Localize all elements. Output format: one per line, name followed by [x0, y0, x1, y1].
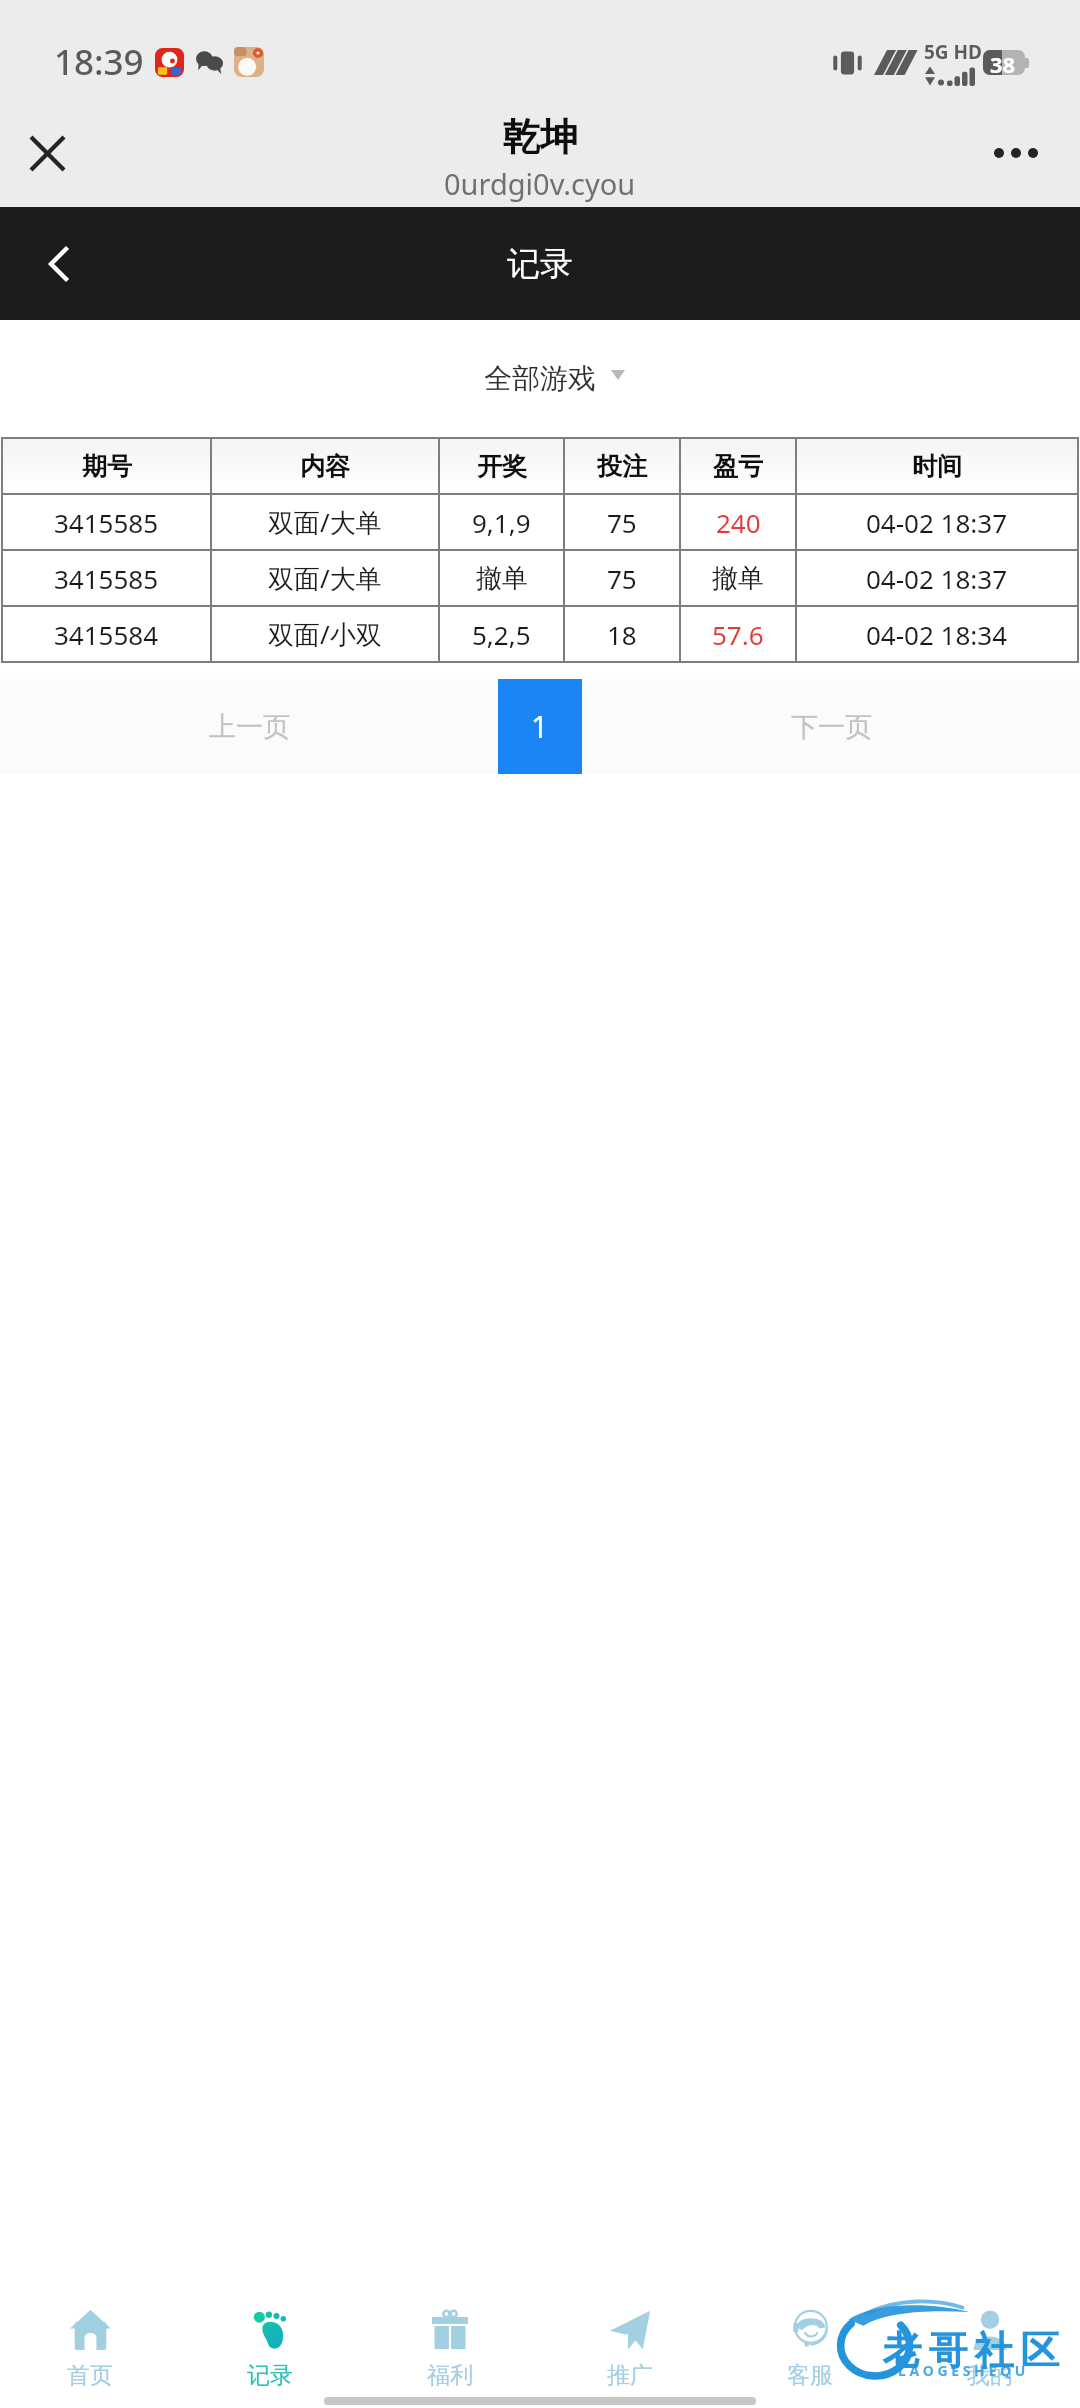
- button[interactable]: 客服: [720, 2309, 900, 2408]
- button[interactable]: 记录: [180, 2309, 360, 2408]
- staticText: 3415584: [54, 617, 159, 652]
- button[interactable]: 全部游戏: [484, 361, 596, 396]
- staticText: 04-02 18:34: [866, 617, 1008, 652]
- button[interactable]: 下一页: [582, 679, 1080, 774]
- staticText: 记录: [507, 243, 573, 285]
- staticText: 75: [607, 561, 637, 596]
- staticText: 客服: [787, 2361, 833, 2390]
- staticText: 记录: [247, 2361, 293, 2390]
- staticText: 撤单: [712, 562, 764, 595]
- button[interactable]: 我的: [900, 2309, 1080, 2408]
- staticText: 9,1,9: [472, 505, 531, 540]
- staticText: 57.6: [712, 617, 764, 652]
- button[interactable]: 上一页: [0, 679, 498, 774]
- staticText: 投注: [597, 451, 647, 482]
- staticText: 240: [716, 505, 761, 540]
- button[interactable]: 推广: [540, 2309, 720, 2408]
- staticText: 时间: [912, 451, 962, 482]
- staticText: 福利: [427, 2361, 473, 2390]
- staticText: L A O G E S H E Q U: [898, 2361, 1026, 2380]
- staticText: 开奖: [477, 451, 527, 482]
- staticText: 5G HD: [924, 39, 983, 65]
- staticText: 下一页: [791, 710, 872, 744]
- staticText: 撤单: [476, 562, 528, 595]
- button[interactable]: Close: [0, 106, 94, 200]
- staticText: 18:39: [54, 38, 144, 86]
- staticText: 18: [607, 617, 637, 652]
- staticText: 双面/大单: [268, 560, 382, 596]
- staticText: 04-02 18:37: [866, 505, 1008, 540]
- staticText: 乾坤: [502, 113, 578, 161]
- staticText: 期号: [82, 451, 132, 482]
- staticText: 推广: [607, 2361, 653, 2390]
- staticText: 上一页: [209, 710, 290, 744]
- button[interactable]: 福利: [360, 2309, 540, 2408]
- staticText: 内容: [300, 451, 350, 482]
- staticText: 3415585: [54, 561, 159, 596]
- staticText: 04-02 18:37: [866, 561, 1008, 596]
- button[interactable]: 首页: [0, 2309, 180, 2408]
- staticText: 盈亏: [713, 451, 763, 482]
- staticText: 全部游戏: [484, 361, 596, 396]
- staticText: 3415585: [54, 505, 159, 540]
- staticText: 75: [607, 505, 637, 540]
- staticText: 5,2,5: [472, 617, 531, 652]
- staticText: 我的: [967, 2361, 1013, 2390]
- staticText: 首页: [67, 2361, 113, 2390]
- staticText: 双面/小双: [268, 616, 382, 652]
- staticText: 1: [531, 706, 549, 747]
- staticText: 0urdgi0v.cyou: [444, 164, 636, 203]
- button[interactable]: 1: [498, 679, 582, 774]
- button[interactable]: More options: [969, 106, 1063, 200]
- staticText: 双面/大单: [268, 504, 382, 540]
- staticText: 38: [990, 49, 1016, 74]
- staticText: 老哥社区: [879, 2326, 1063, 2375]
- button[interactable]: Back: [16, 222, 100, 306]
